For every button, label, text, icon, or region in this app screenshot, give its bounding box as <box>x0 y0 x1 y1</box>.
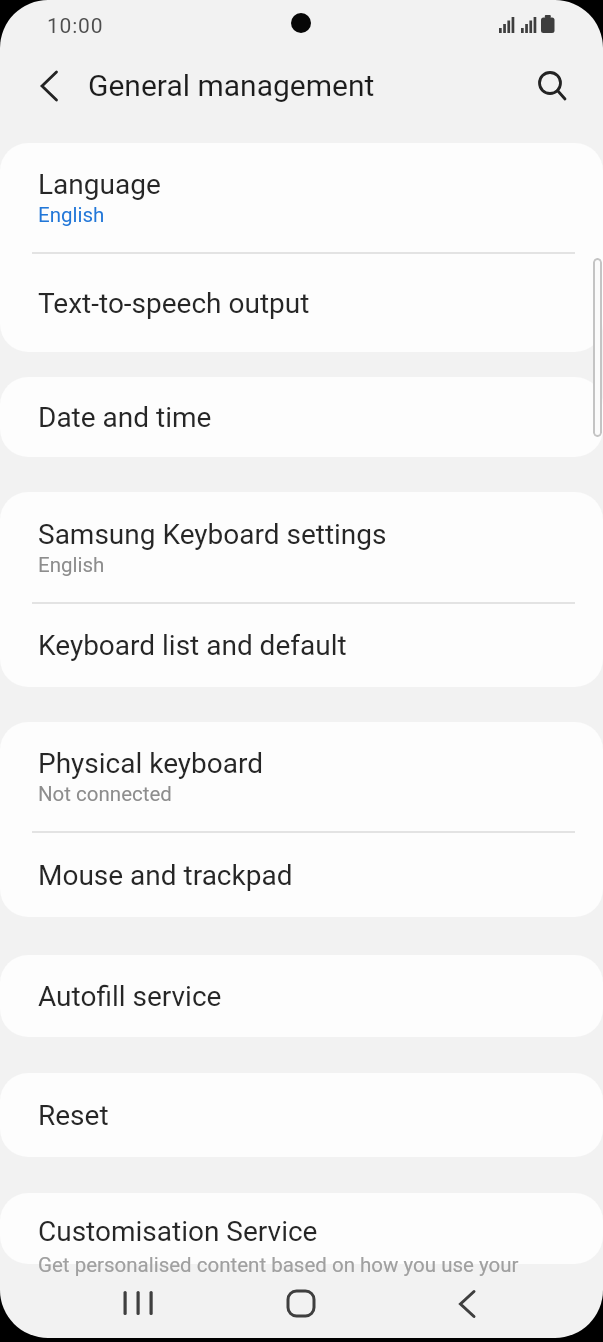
button[interactable]: Samsung Keyboard settings <box>0 492 603 602</box>
staticText: Date and time <box>38 401 212 434</box>
staticText: Language <box>38 168 161 201</box>
staticText: English <box>38 553 105 577</box>
button[interactable] <box>273 1280 329 1328</box>
staticText: 10:00 <box>47 14 104 39</box>
staticText: Mouse and trackpad <box>38 859 293 892</box>
staticText: General management <box>88 68 375 103</box>
button[interactable] <box>528 62 576 110</box>
staticText: Samsung Keyboard settings <box>38 518 387 551</box>
button[interactable] <box>110 1280 166 1328</box>
button[interactable] <box>26 62 74 110</box>
button[interactable]: Customisation Service <box>0 1193 603 1264</box>
staticText: Keyboard list and default <box>38 629 347 662</box>
button[interactable]: Text-to-speech output <box>0 254 603 352</box>
button[interactable] <box>440 1280 496 1328</box>
button[interactable]: Keyboard list and default <box>0 604 603 687</box>
staticText: Autofill service <box>38 980 222 1013</box>
button[interactable]: Autofill service <box>0 955 603 1037</box>
staticText: Reset <box>38 1099 109 1132</box>
button[interactable]: Physical keyboard <box>0 722 603 831</box>
staticText: Physical keyboard <box>38 747 264 780</box>
staticText: Get personalised content based on how yo… <box>38 1253 519 1277</box>
staticText: English <box>38 203 105 227</box>
staticText: Text-to-speech output <box>38 287 310 320</box>
staticText: Not connected <box>38 782 172 806</box>
button[interactable]: Language <box>0 143 603 252</box>
staticText: Customisation Service <box>38 1215 318 1248</box>
button[interactable]: Mouse and trackpad <box>0 833 603 917</box>
button[interactable]: Date and time <box>0 377 603 457</box>
button[interactable]: Reset <box>0 1073 603 1157</box>
